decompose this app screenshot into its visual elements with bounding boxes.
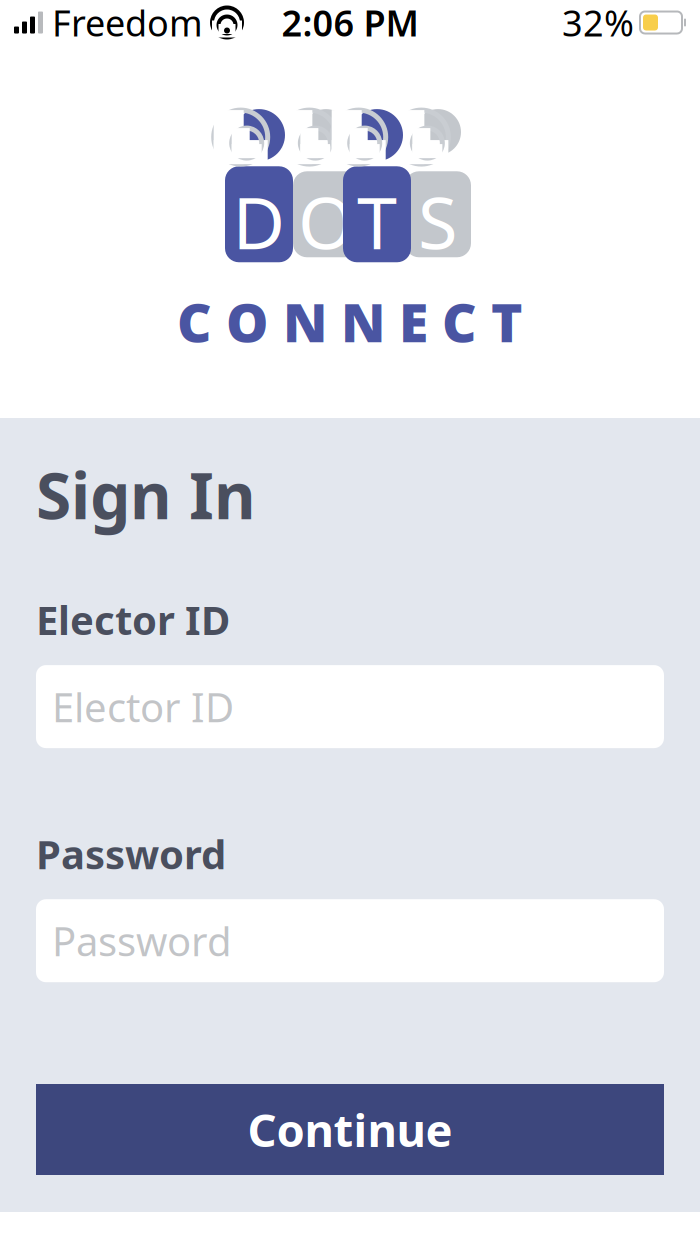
staticText: Freedom bbox=[52, 0, 203, 46]
staticText: Elector ID bbox=[52, 680, 234, 733]
staticText: D bbox=[232, 173, 285, 269]
staticText: Sign In bbox=[36, 452, 256, 537]
button[interactable]: Elector ID bbox=[36, 665, 664, 748]
staticText: Password bbox=[52, 914, 232, 967]
staticText: C O N N E C T bbox=[177, 286, 523, 357]
button[interactable]: Continue bbox=[36, 1084, 664, 1175]
button[interactable]: Password bbox=[36, 899, 664, 982]
staticText: T bbox=[357, 173, 397, 269]
staticText: 2:06 PM bbox=[281, 0, 418, 46]
staticText: Password bbox=[36, 827, 226, 880]
staticText: S bbox=[418, 173, 458, 269]
staticText: 32% bbox=[562, 0, 634, 46]
staticText: Elector ID bbox=[36, 593, 230, 646]
staticText: Continue bbox=[247, 1099, 452, 1160]
staticText: O bbox=[298, 173, 354, 269]
